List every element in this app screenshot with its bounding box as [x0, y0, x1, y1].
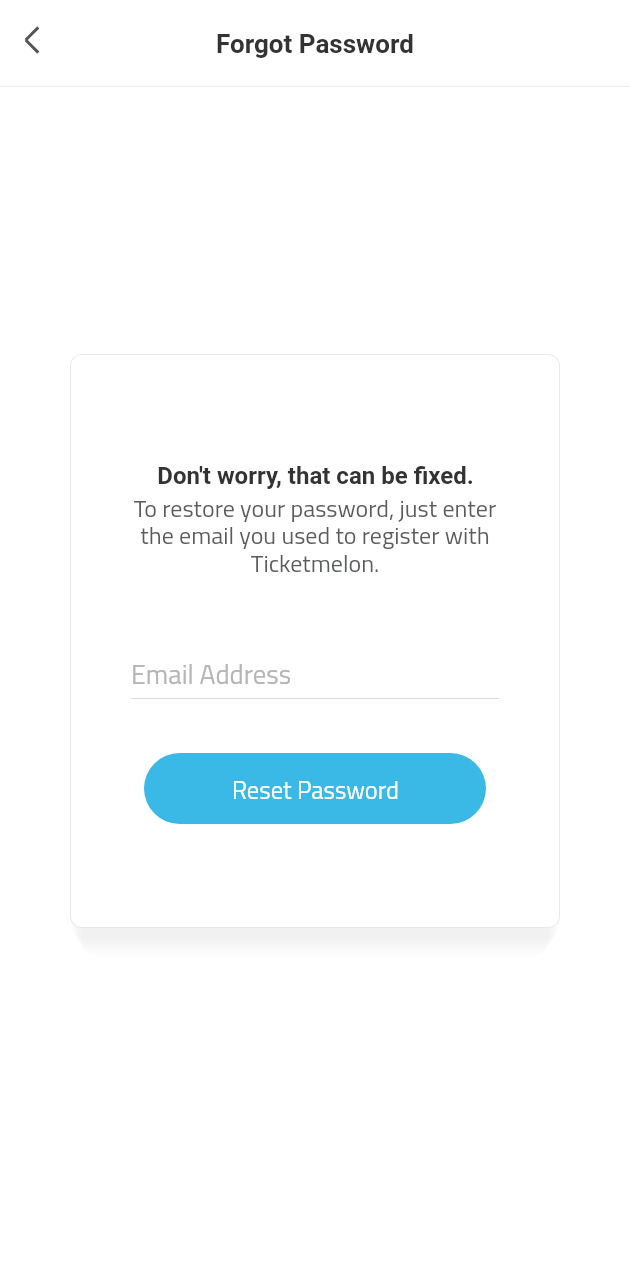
button[interactable]: Email Address	[131, 654, 499, 699]
staticText: Reset Password	[232, 771, 399, 808]
staticText: Email Address	[131, 654, 292, 695]
staticText: Don't worry, that can be fixed.	[157, 462, 474, 490]
staticText: To restore your password, just enter the…	[80, 490, 550, 582]
button[interactable]: Back	[4, 12, 60, 68]
staticText: Forgot Password	[216, 29, 414, 59]
button[interactable]: Reset Password	[144, 753, 486, 824]
